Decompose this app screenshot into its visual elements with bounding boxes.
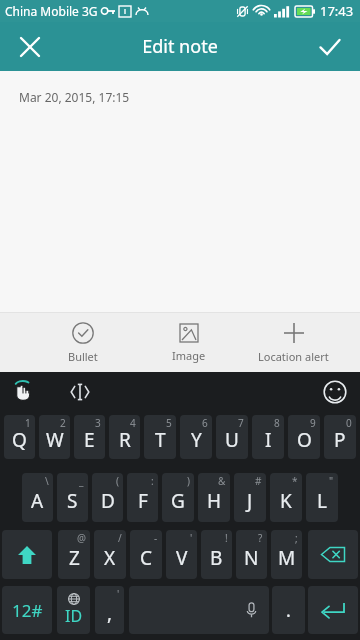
button[interactable]: ) [162, 473, 194, 522]
button[interactable]: ' [95, 586, 124, 634]
staticText: E [84, 427, 95, 453]
button[interactable]: Enter [308, 586, 358, 634]
staticText: O [297, 427, 312, 453]
button[interactable]: Mar 20, 2015, 17:15 [0, 71, 360, 312]
button[interactable]: Location alert [241, 313, 346, 372]
staticText: W [46, 427, 64, 453]
button[interactable]: ' [166, 530, 197, 579]
button[interactable]: Save note [308, 25, 352, 69]
button[interactable]: ( [92, 473, 123, 522]
button[interactable]: 7 [216, 415, 248, 459]
staticText: T [155, 427, 166, 453]
staticText: P [334, 427, 346, 453]
staticText: H [207, 488, 222, 514]
button[interactable]: " [306, 473, 338, 522]
staticText: * [292, 474, 298, 488]
staticText: L [317, 488, 327, 514]
staticText: 17:43 [320, 2, 354, 20]
staticText: \ [45, 474, 49, 488]
staticText: 1 [25, 416, 31, 430]
staticText: M [278, 545, 296, 571]
button[interactable]: 12# [2, 586, 52, 634]
staticText: 3 [95, 416, 101, 430]
staticText: V [176, 545, 188, 571]
staticText: & [218, 474, 226, 488]
staticText: Z [69, 545, 80, 571]
button[interactable]: # [234, 473, 266, 522]
staticText: K [280, 488, 292, 514]
button[interactable]: / [94, 530, 126, 579]
staticText: Mar 20, 2015, 17:15 [19, 89, 130, 105]
staticText: , [107, 600, 113, 626]
staticText: F [138, 488, 148, 514]
staticText: ? [258, 531, 263, 545]
button[interactable]: \ [22, 473, 53, 522]
button[interactable]: Bullet [30, 313, 136, 372]
button[interactable]: Emoji [318, 375, 352, 409]
staticText: 12# [12, 599, 43, 622]
staticText: 4 [130, 416, 136, 430]
staticText: - [154, 531, 158, 545]
button[interactable]: 9 [288, 415, 320, 459]
button[interactable]: Close [8, 25, 52, 69]
staticText: X [104, 545, 116, 571]
button[interactable]: * [270, 473, 302, 522]
button[interactable]: 6 [180, 415, 212, 459]
staticText: 5 [166, 416, 172, 430]
staticText: ID [65, 605, 83, 627]
staticText: A [31, 488, 44, 514]
button[interactable]: 0 [324, 415, 356, 459]
staticText: 6 [202, 416, 208, 430]
staticText: @ [77, 531, 86, 545]
button[interactable]: Image [136, 313, 241, 372]
button[interactable]: ! [201, 530, 232, 579]
staticText: # [255, 474, 262, 488]
staticText: 2 [60, 416, 66, 430]
staticText: Image [172, 348, 206, 363]
staticText: . [286, 598, 291, 623]
staticText: " [329, 474, 334, 488]
staticText: ' [117, 587, 120, 601]
staticText: G [171, 488, 185, 514]
staticText: ! [225, 531, 228, 545]
button[interactable]: Move cursor [63, 375, 97, 409]
staticText: 8 [274, 416, 280, 430]
staticText: Y [191, 427, 202, 453]
button[interactable]: . [272, 586, 305, 634]
button[interactable]: 2 [39, 415, 70, 459]
staticText: ; [295, 531, 298, 545]
staticText: Bullet [68, 349, 98, 364]
staticText: S [67, 488, 78, 514]
staticText: N [244, 545, 259, 571]
button[interactable]: & [198, 473, 230, 522]
button[interactable]: Handwriting [6, 375, 40, 409]
button[interactable]: Backspace [308, 530, 358, 579]
button[interactable]: 1 [4, 415, 35, 459]
button[interactable]: Space [129, 586, 269, 634]
staticText: Location alert [258, 349, 329, 364]
button[interactable]: _ [57, 473, 88, 522]
button[interactable]: 4 [109, 415, 140, 459]
button[interactable]: : [127, 473, 158, 522]
staticText: Q [12, 427, 27, 453]
staticText: 9 [310, 416, 316, 430]
button[interactable]: 3 [74, 415, 105, 459]
button[interactable]: ? [236, 530, 267, 579]
button[interactable]: @ [58, 530, 90, 579]
staticText: ) [187, 474, 190, 488]
staticText: U [225, 427, 239, 453]
staticText: 7 [238, 416, 244, 430]
button[interactable]: 8 [252, 415, 284, 459]
staticText: Edit note [142, 34, 218, 59]
button[interactable]: ID [57, 586, 90, 634]
button[interactable]: Shift [2, 530, 52, 579]
staticText: I [265, 427, 272, 453]
button[interactable]: - [130, 530, 162, 579]
staticText: / [118, 531, 122, 545]
staticText: ' [190, 531, 193, 545]
button[interactable]: 5 [144, 415, 176, 459]
staticText: China Mobile 3G [5, 3, 98, 19]
button[interactable]: ; [271, 530, 302, 579]
staticText: R [119, 427, 131, 453]
staticText: ( [116, 474, 119, 488]
